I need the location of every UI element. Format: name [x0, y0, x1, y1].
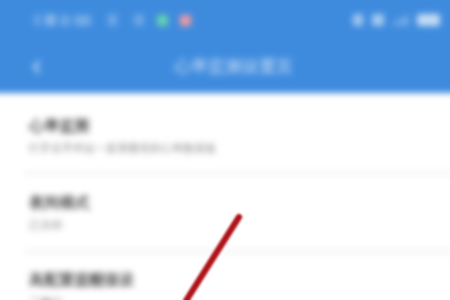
- staticText: 已关闭: [29, 295, 62, 300]
- staticText: 心率监测: [29, 117, 89, 136]
- staticText: 高配置提醒值设: [29, 271, 134, 290]
- staticText: 打开后手环会一直测量您的心率数据值: [29, 141, 216, 155]
- button[interactable]: Back: [22, 52, 52, 82]
- staticText: 夜间模式: [29, 194, 89, 213]
- staticText: 心率监测设置页: [174, 56, 293, 77]
- button[interactable]: 高配置提醒值设: [0, 252, 450, 300]
- button[interactable]: 夜间模式: [0, 174, 450, 251]
- button[interactable]: 心率监测: [0, 93, 450, 173]
- staticText: 已关闭: [29, 218, 62, 232]
